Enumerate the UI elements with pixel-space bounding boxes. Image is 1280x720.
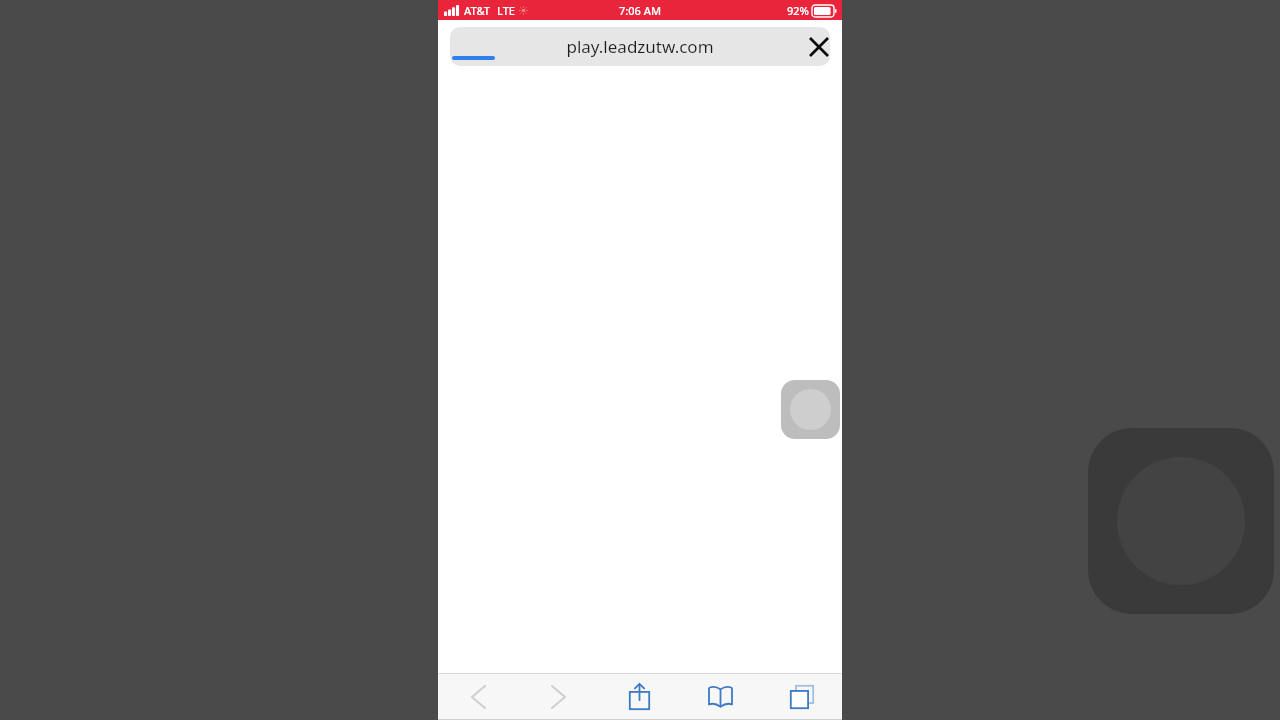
staticText: 7:06 AM [619, 3, 662, 18]
staticText: 92% [787, 3, 809, 18]
button[interactable]: Tabs [761, 674, 842, 719]
button[interactable]: Close [800, 28, 838, 66]
button[interactable]: play.leadzutw.com [450, 27, 830, 66]
button[interactable]: Share [599, 674, 680, 719]
button[interactable]: Back [438, 674, 518, 719]
staticText: AT&T [464, 3, 491, 18]
button[interactable]: Bookmarks [680, 674, 761, 719]
button[interactable]: Forward [518, 674, 599, 719]
staticText: LTE [497, 3, 515, 18]
staticText: play.leadzutw.com [566, 35, 714, 58]
